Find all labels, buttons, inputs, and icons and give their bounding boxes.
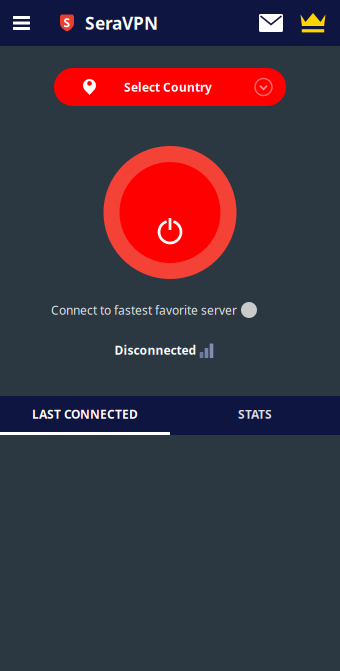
button[interactable]: Connect to fastest favorite server — [51, 301, 257, 319]
button[interactable]: Connect — [103, 146, 236, 279]
button[interactable]: STATS — [170, 396, 340, 432]
staticText: Disconnected — [114, 342, 196, 358]
button[interactable]: Menu — [0, 0, 43, 46]
button[interactable]: Select Country — [54, 68, 286, 106]
staticText: STATS — [238, 406, 272, 422]
staticText: Connect to fastest favorite server — [51, 302, 237, 318]
button[interactable]: Messages — [250, 0, 292, 46]
staticText: S — [63, 14, 70, 30]
staticText: Select Country — [124, 79, 212, 95]
button[interactable]: Premium — [292, 0, 334, 46]
staticText: LAST CONNECTED — [32, 406, 138, 422]
staticText: SeraVPN — [85, 11, 158, 34]
button[interactable]: LAST CONNECTED — [0, 396, 170, 432]
